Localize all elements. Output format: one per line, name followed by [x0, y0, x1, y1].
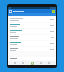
button[interactable]: Notifications	[39, 61, 43, 65]
button[interactable]	[9, 47, 55, 51]
button[interactable]	[9, 23, 55, 28]
button[interactable]: Search	[21, 61, 25, 65]
button[interactable]: Profile	[47, 61, 51, 65]
button[interactable]: Open navigation menu	[9, 10, 12, 13]
button[interactable]	[9, 29, 55, 34]
button[interactable]	[9, 41, 55, 46]
button[interactable]	[9, 17, 55, 22]
button[interactable]: Action	[52, 10, 55, 13]
button[interactable]: Add	[30, 61, 34, 65]
button[interactable]	[9, 57, 55, 60]
button[interactable]: Home	[13, 61, 17, 65]
button[interactable]	[9, 35, 55, 40]
